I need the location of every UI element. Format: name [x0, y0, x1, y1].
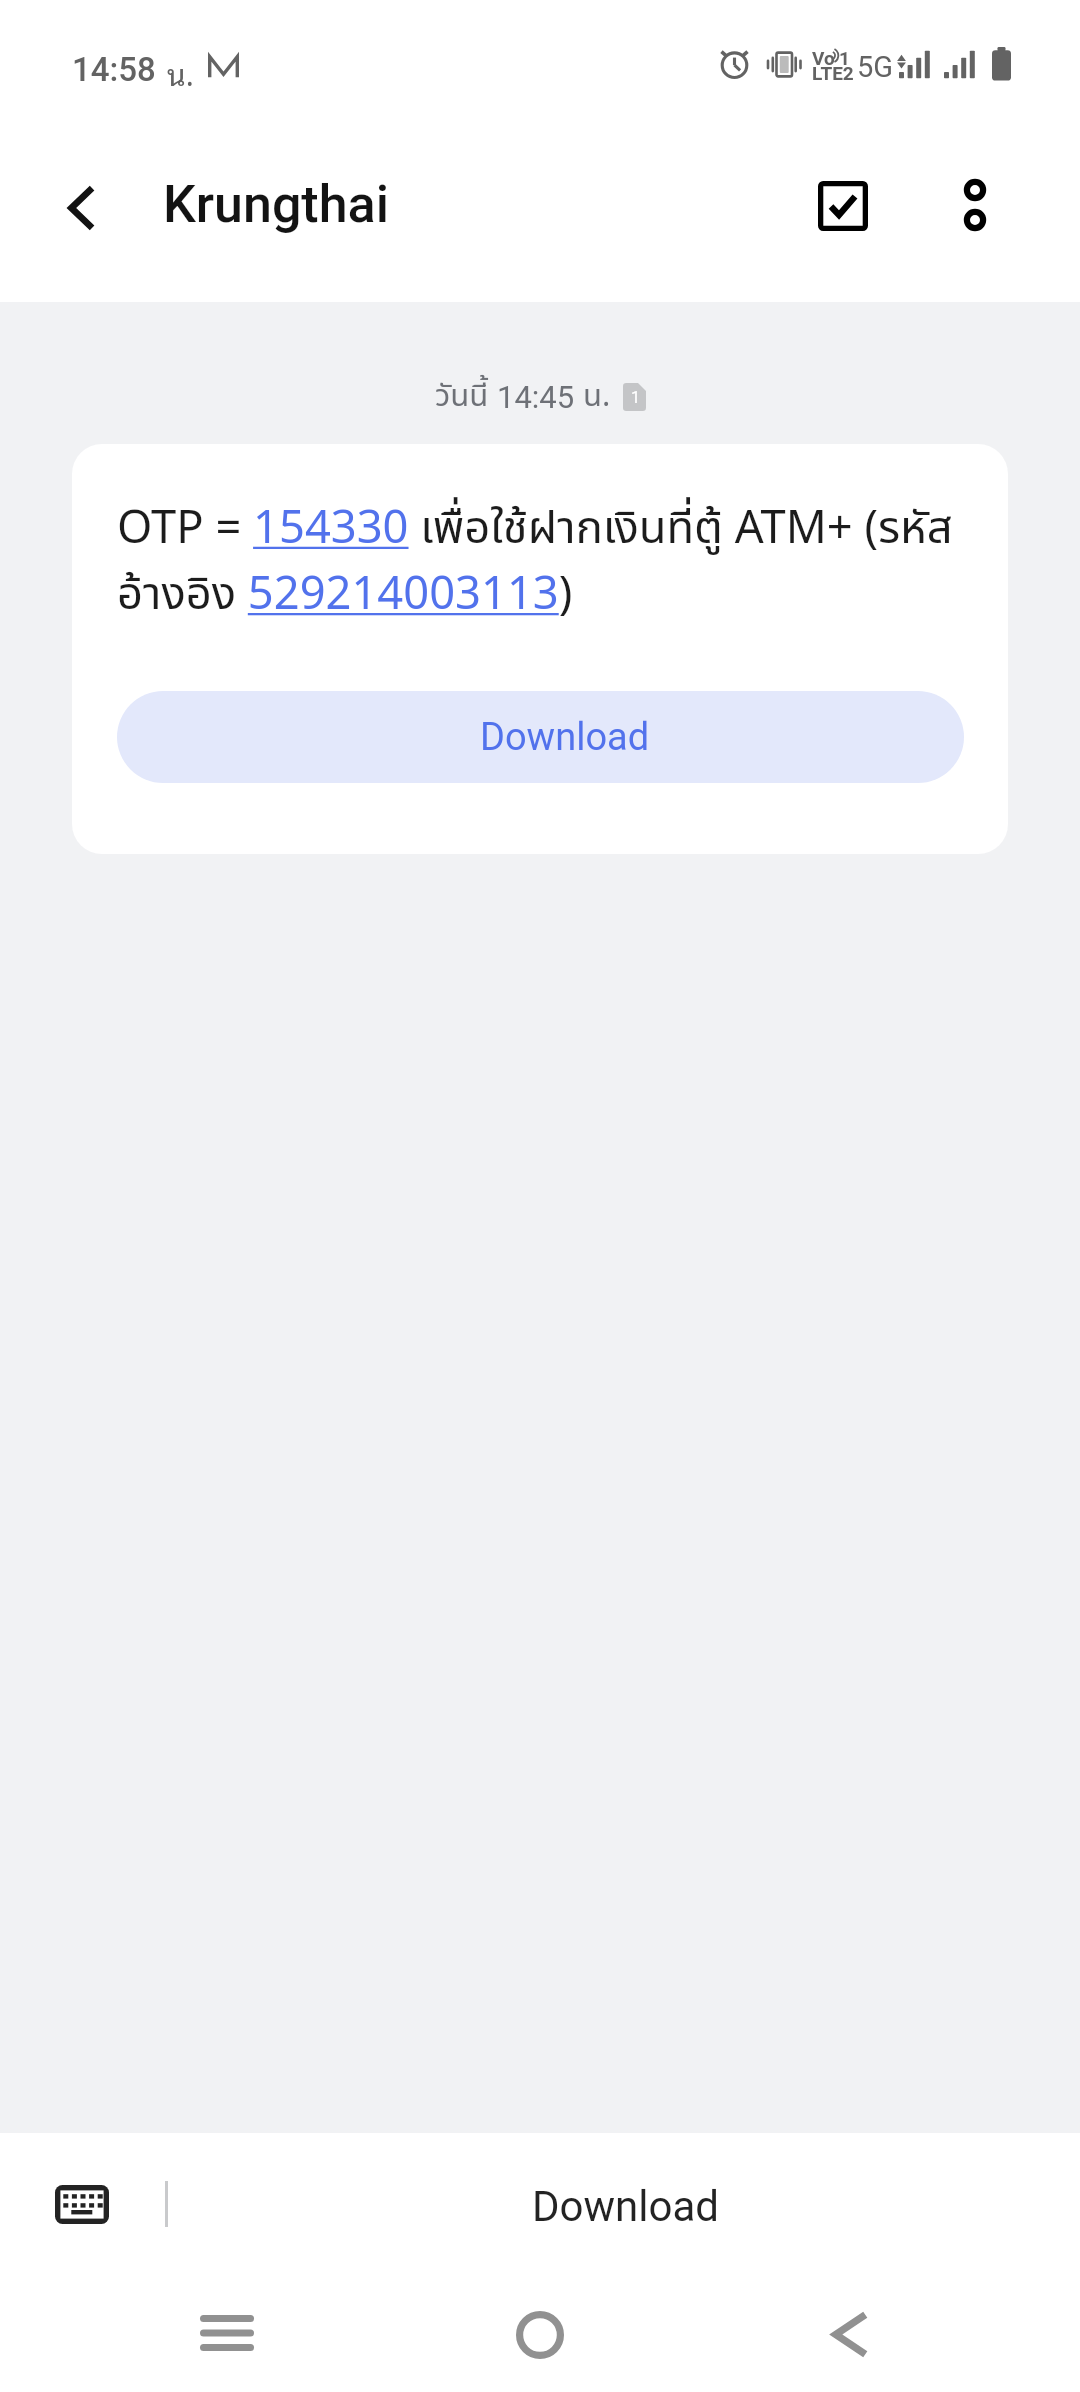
button[interactable]: Recent apps	[173, 2279, 281, 2386]
staticText: 14:58	[72, 50, 156, 89]
staticText: 5G	[857, 50, 894, 84]
button[interactable]: Back	[32, 160, 128, 256]
staticText: 14:45	[497, 379, 575, 415]
staticText: Krungthai	[163, 174, 390, 235]
staticText: น.	[583, 373, 611, 420]
staticText: 1	[631, 388, 640, 407]
button[interactable]: Select messages	[795, 158, 891, 254]
button[interactable]: OTP = 154330 เพื่อใช้ฝากเงินที่ตู้ ATM+ …	[72, 444, 1008, 854]
staticText: 1	[839, 47, 850, 69]
staticText: วันนี้	[435, 373, 489, 420]
button[interactable]: Home	[486, 2281, 594, 2388]
staticText: น.	[167, 48, 194, 96]
button[interactable]: Download	[170, 2133, 1080, 2285]
button[interactable]: More options	[927, 158, 1023, 254]
button[interactable]: Keyboard	[42, 2171, 122, 2237]
staticText: LTE2	[812, 62, 854, 84]
staticText: Vo	[812, 47, 835, 69]
button[interactable]: Download	[117, 691, 964, 783]
staticText: Download	[532, 2182, 719, 2231]
staticText: Download	[480, 715, 650, 760]
staticText: OTP = 154330 เพื่อใช้ฝากเงินที่ตู้ ATM+ …	[117, 495, 964, 630]
button[interactable]: Back	[795, 2281, 903, 2388]
